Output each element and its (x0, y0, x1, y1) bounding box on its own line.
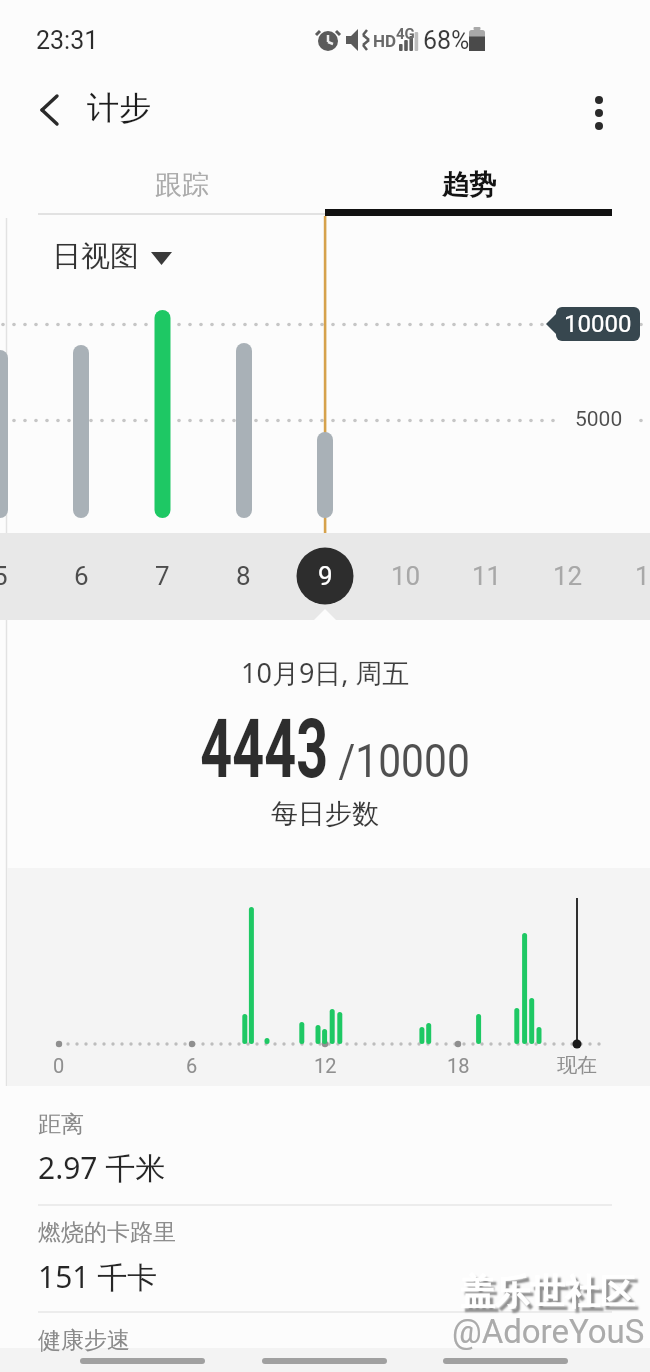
button[interactable]: 8 (203, 549, 283, 603)
staticText: 18 (447, 1054, 470, 1077)
button[interactable]: 5 (0, 549, 40, 603)
staticText: 2.97 千米 (38, 1147, 166, 1188)
staticText: 距离 (38, 1110, 84, 1139)
button[interactable]: 9 (285, 549, 365, 603)
staticText: 盖乐世社区 (460, 1270, 635, 1314)
staticText: @AdoreYouS (452, 1312, 645, 1351)
staticText: 5000 (575, 407, 623, 432)
staticText: 健康步速 (38, 1326, 130, 1355)
button[interactable] (0, 1314, 650, 1372)
staticText: 趋势 (442, 168, 496, 202)
staticText: 燃烧的卡路里 (38, 1218, 176, 1247)
staticText: 6 (186, 1054, 198, 1077)
button[interactable]: 10 (366, 549, 446, 603)
staticText: 0 (53, 1054, 65, 1077)
staticText: 每日步数 (271, 797, 379, 831)
button[interactable]: 12 (528, 549, 608, 603)
staticText: 12 (553, 561, 583, 591)
staticText: 23:31 (36, 26, 99, 55)
staticText: 现在 (557, 1053, 597, 1078)
staticText: 跟踪 (155, 168, 209, 202)
staticText: 151 千卡 (38, 1256, 158, 1297)
staticText: 日视图 (52, 238, 139, 275)
button[interactable]: 跟踪 (38, 161, 325, 209)
button[interactable]: 7 (122, 549, 202, 603)
staticText: /10000 (339, 734, 470, 788)
button[interactable]: 趋势 (325, 161, 612, 209)
staticText: 4443 (200, 701, 329, 797)
staticText: 5 (0, 561, 8, 591)
button[interactable] (0, 1206, 650, 1312)
staticText: 10月9日, 周五 (241, 654, 410, 691)
staticText: 12 (314, 1054, 337, 1077)
staticText: 7 (155, 561, 170, 591)
staticText: HD (373, 31, 397, 51)
staticText: 10 (391, 561, 421, 591)
staticText: 6 (74, 561, 89, 591)
button[interactable]: 6 (41, 549, 121, 603)
button[interactable] (0, 1098, 650, 1204)
button[interactable] (579, 86, 621, 134)
button[interactable]: 13 (610, 549, 650, 603)
button[interactable] (44, 234, 180, 276)
staticText: 8 (236, 561, 251, 591)
staticText: 4G (396, 25, 415, 43)
staticText: 13 (635, 561, 650, 591)
staticText: 68% (423, 26, 470, 55)
staticText: 10000 (564, 310, 632, 338)
staticText: 9 (318, 561, 333, 591)
button[interactable] (30, 86, 72, 134)
staticText: 计步 (87, 88, 151, 128)
staticText: 11 (472, 561, 502, 591)
button[interactable]: 11 (447, 549, 527, 603)
